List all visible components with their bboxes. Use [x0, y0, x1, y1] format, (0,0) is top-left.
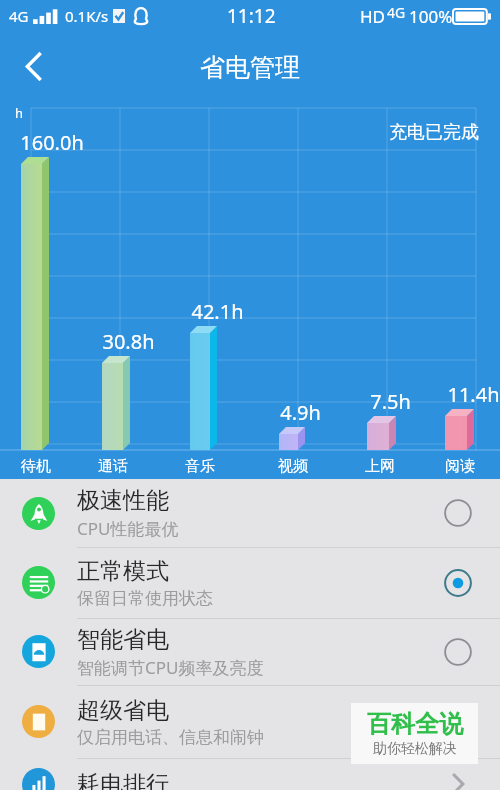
staticText: 160.0h: [20, 129, 84, 156]
staticText: 待机: [21, 457, 51, 476]
staticText: 充电已完成: [389, 121, 479, 144]
staticText: 通话: [98, 457, 128, 476]
staticText: HD: [360, 5, 386, 28]
staticText: 11:12: [227, 3, 276, 29]
button[interactable]: 超级省电: [0, 685, 500, 758]
staticText: 正常模式: [77, 557, 169, 586]
staticText: 仅启用电话、信息和闹钟: [77, 727, 264, 748]
button[interactable]: Back: [6, 38, 62, 94]
staticText: 4G: [9, 6, 29, 26]
button[interactable]: 正常模式: [0, 547, 500, 618]
staticText: 4.9h: [280, 399, 321, 426]
staticText: 耗电排行: [77, 770, 169, 790]
staticText: 上网: [365, 457, 395, 476]
staticText: h: [15, 104, 24, 122]
staticText: 100%: [409, 5, 453, 28]
staticText: 超级省电: [77, 696, 169, 725]
staticText: 11.4h: [447, 381, 500, 408]
staticText: 30.8h: [102, 328, 155, 355]
button[interactable]: 耗电排行: [0, 758, 500, 790]
staticText: 0.1K/s: [65, 6, 109, 26]
staticText: 7.5h: [370, 388, 411, 415]
staticText: CPU性能最优: [77, 517, 179, 540]
staticText: 极速性能: [77, 486, 169, 515]
staticText: 助你轻松解决: [373, 740, 457, 758]
staticText: 智能省电: [77, 625, 169, 654]
staticText: 百科全说: [367, 709, 463, 739]
staticText: 阅读: [445, 457, 475, 476]
button[interactable]: 极速性能: [0, 479, 500, 547]
staticText: 音乐: [185, 457, 215, 476]
staticText: 4G: [387, 3, 406, 22]
staticText: 42.1h: [191, 298, 244, 325]
staticText: 视频: [278, 457, 308, 476]
staticText: 保留日常使用状态: [77, 588, 213, 609]
button[interactable]: 智能省电: [0, 618, 500, 685]
staticText: 智能调节CPU频率及亮度: [77, 656, 264, 679]
staticText: 省电管理: [200, 52, 300, 83]
